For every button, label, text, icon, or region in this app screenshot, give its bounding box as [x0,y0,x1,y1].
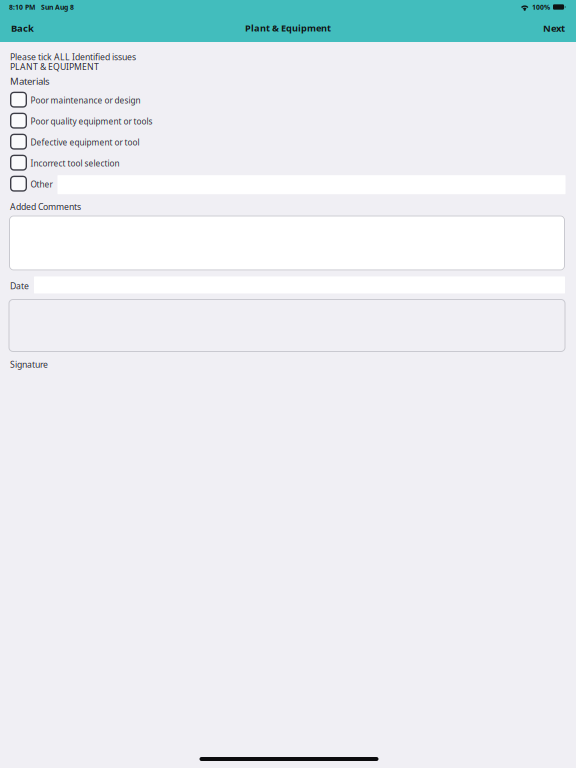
button[interactable]: Poor maintenance or design [0,90,576,111]
button[interactable]: Next [533,15,576,41]
button[interactable]: Other [0,174,576,195]
staticText: Signature [10,358,48,370]
staticText: PLANT & EQUIPMENT [10,61,99,73]
button[interactable]: Back [0,15,44,41]
button[interactable]: Defective equipment or tool [0,132,576,153]
staticText: Back [11,22,34,34]
staticText: Defective equipment or tool [30,137,139,148]
button[interactable]: Poor quality equipment or tools [0,111,576,132]
staticText: Incorrect tool selection [30,158,119,169]
staticText: 100% [532,2,550,12]
staticText: Please tick ALL Identified issues [10,51,136,63]
staticText: Poor maintenance or design [30,95,140,106]
staticText: Poor quality equipment or tools [30,116,152,127]
button[interactable]: Signature [0,299,576,351]
button[interactable]: Added Comments [0,215,576,270]
staticText: Materials [10,75,50,88]
button[interactable]: Date [29,276,576,293]
staticText: Next [543,22,565,34]
staticText: Added Comments [10,201,81,212]
staticText: Sun Aug 8 [41,2,74,12]
staticText: Date [10,280,29,292]
staticText: 8:10 PM [9,2,35,12]
staticText: Other [30,179,52,190]
button[interactable]: Incorrect tool selection [0,153,576,174]
staticText: Plant & Equipment [245,22,331,34]
